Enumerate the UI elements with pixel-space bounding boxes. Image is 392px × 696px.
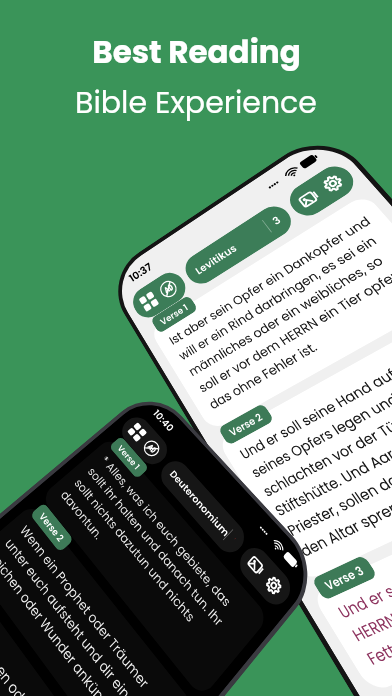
staticText: 10:37 — [126, 259, 155, 285]
staticText: Verse 2 — [36, 510, 68, 545]
button[interactable]: Verse 1 — [150, 294, 199, 334]
button[interactable]: und das Zeichen oder Wunder trifft ein, … — [0, 566, 149, 696]
button[interactable]: Verse 2 — [218, 401, 275, 448]
staticText: Und er soll von dem Dankopfer dem HERRN … — [334, 447, 392, 696]
staticText: Best Reading — [92, 30, 301, 73]
button[interactable]: Und er soll von dem Dankopfer dem HERRN … — [310, 417, 392, 696]
button[interactable]: Settings — [319, 170, 347, 197]
button[interactable]: Images — [243, 553, 269, 579]
staticText: Ist aber sein Opfer ein Dankopfer und wi… — [164, 203, 392, 419]
button[interactable]: Menu — [138, 291, 159, 312]
button[interactable]: Remove ads — [157, 277, 180, 301]
staticText: Levitikus — [192, 240, 241, 278]
staticText: * Alles, was ich euch gebiete, das sollt… — [53, 451, 260, 676]
staticText: 10:40 — [150, 406, 177, 435]
button[interactable]: Deuteronomium — [154, 453, 252, 561]
staticText: 13 — [227, 535, 239, 546]
button[interactable]: Verse 3 — [311, 549, 378, 607]
button[interactable]: Menu — [127, 422, 147, 442]
staticText: Verse 3 — [321, 558, 367, 598]
button[interactable]: Remove ads — [140, 437, 163, 460]
staticText: 3 — [269, 212, 284, 229]
staticText: Verse 1 — [115, 442, 143, 472]
button[interactable]: Verse 2 — [28, 502, 75, 553]
staticText: Verse 2 — [226, 408, 265, 440]
staticText: Bible Experience — [75, 82, 317, 124]
button[interactable]: Und er soll seine Hand auf den Kopf sein… — [216, 277, 392, 611]
button[interactable]: Verse 3 — [0, 565, 4, 621]
button[interactable]: Settings — [260, 572, 287, 599]
button[interactable]: * Alles, was ich euch gebiete, das sollt… — [35, 433, 282, 696]
staticText: und das Zeichen oder Wunder trifft ein, … — [0, 587, 122, 696]
staticText: Deuteronomium — [166, 466, 233, 541]
button[interactable]: Ist aber sein Opfer ein Dankopfer und wi… — [146, 181, 392, 439]
staticText: Verse 1 — [157, 301, 191, 328]
button[interactable]: Verse 1 — [108, 435, 150, 480]
staticText: Und er soll seine Hand auf den Kopf sein… — [236, 302, 392, 586]
staticText: Wenn ein Prophet oder Träumer unter euch… — [0, 522, 188, 696]
button[interactable]: Wenn ein Prophet oder Träumer unter euch… — [0, 503, 212, 696]
button[interactable]: Images — [296, 185, 323, 212]
button[interactable]: Levitikus — [177, 198, 299, 290]
